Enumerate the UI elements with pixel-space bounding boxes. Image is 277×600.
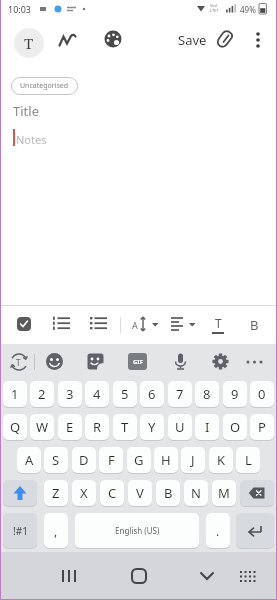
button[interactable]: Q	[3, 414, 27, 440]
button[interactable]: 6	[140, 381, 164, 407]
button[interactable]	[54, 562, 84, 590]
staticText: G	[134, 451, 144, 469]
button[interactable]: 2	[30, 381, 54, 407]
button[interactable]: X	[72, 480, 96, 506]
button[interactable]: V	[128, 480, 152, 506]
button[interactable]: 7	[168, 381, 192, 407]
button[interactable]	[236, 564, 260, 588]
button[interactable]: M	[212, 480, 236, 506]
button[interactable]: 5	[113, 381, 137, 407]
staticText: Uncategorised	[20, 81, 69, 91]
button[interactable]: O	[223, 414, 247, 440]
button[interactable]	[58, 33, 80, 51]
staticText: 6	[148, 385, 156, 403]
staticText: GIF	[133, 358, 143, 366]
staticText: ,	[54, 523, 58, 539]
button[interactable]	[210, 351, 231, 372]
button[interactable]	[240, 480, 274, 506]
button[interactable]	[44, 351, 65, 372]
button[interactable]: E	[58, 414, 82, 440]
button[interactable]: GIF	[128, 353, 147, 370]
button[interactable]: T	[206, 313, 230, 337]
button[interactable]: P	[250, 414, 274, 440]
button[interactable]: 0	[250, 381, 274, 407]
button[interactable]: F	[99, 447, 123, 473]
button[interactable]: C	[100, 480, 124, 506]
button[interactable]: ,	[44, 513, 68, 548]
staticText: T	[24, 33, 34, 53]
button[interactable]	[168, 313, 202, 337]
button[interactable]	[14, 313, 36, 335]
staticText: M	[218, 484, 230, 502]
button[interactable]: Uncategorised	[11, 77, 78, 95]
staticText: C	[108, 484, 117, 502]
button[interactable]: T	[14, 28, 44, 58]
button[interactable]: T	[113, 414, 137, 440]
staticText: D	[79, 451, 89, 469]
button[interactable]: U	[168, 414, 192, 440]
staticText: P	[258, 418, 266, 436]
button[interactable]: A	[130, 313, 164, 337]
staticText: Q	[10, 418, 21, 436]
button[interactable]: A	[17, 447, 41, 473]
button[interactable]: English (US)	[75, 513, 199, 548]
button[interactable]: 1	[3, 381, 27, 407]
button[interactable]: Y	[140, 414, 164, 440]
button[interactable]: D	[72, 447, 96, 473]
staticText: Save	[178, 31, 207, 49]
staticText: B	[250, 316, 259, 334]
staticText: T	[215, 315, 222, 331]
button[interactable]: 4	[85, 381, 109, 407]
button[interactable]: G	[127, 447, 151, 473]
staticText: S	[52, 451, 60, 469]
button[interactable]: .	[206, 513, 230, 548]
staticText: R	[93, 418, 102, 436]
button[interactable]: W	[30, 414, 54, 440]
button[interactable]: S	[44, 447, 68, 473]
staticText: K	[217, 451, 226, 469]
staticText: 3	[66, 385, 74, 403]
button[interactable]: B	[156, 480, 180, 506]
button[interactable]	[85, 351, 106, 372]
button[interactable]	[192, 562, 222, 590]
staticText: 1	[11, 385, 19, 403]
staticText: T	[121, 418, 129, 436]
button[interactable]: Z	[44, 480, 68, 506]
staticText: F	[108, 451, 115, 469]
staticText: A	[25, 451, 34, 469]
button[interactable]: 8	[195, 381, 219, 407]
button[interactable]: K	[209, 447, 233, 473]
button[interactable]: N	[184, 480, 208, 506]
button[interactable]: B	[242, 313, 266, 337]
button[interactable]	[51, 313, 73, 335]
button[interactable]: R	[85, 414, 109, 440]
button[interactable]	[236, 513, 274, 548]
button[interactable]	[216, 29, 237, 50]
button[interactable]: I	[195, 414, 219, 440]
button[interactable]	[88, 313, 110, 335]
button[interactable]: L	[236, 447, 260, 473]
button[interactable]: Save	[170, 23, 215, 57]
staticText: O	[230, 418, 241, 436]
staticText: A	[132, 319, 138, 331]
staticText: !#1	[13, 524, 28, 538]
button[interactable]	[170, 351, 191, 372]
button[interactable]	[3, 480, 37, 506]
staticText: 7	[176, 385, 184, 403]
button[interactable]	[103, 30, 125, 52]
button[interactable]: 3	[58, 381, 82, 407]
button[interactable]: J	[181, 447, 205, 473]
button[interactable]: !#1	[3, 513, 37, 548]
staticText: I	[205, 418, 210, 436]
staticText: 9	[231, 385, 239, 403]
button[interactable]	[248, 25, 268, 55]
staticText: 5	[121, 385, 129, 403]
button[interactable]	[244, 351, 265, 372]
staticText: J	[191, 451, 195, 469]
button[interactable]	[124, 562, 154, 590]
button[interactable]: T	[8, 351, 30, 373]
staticText: 4	[93, 385, 101, 403]
button[interactable]: H	[154, 447, 178, 473]
staticText: V	[136, 484, 144, 502]
button[interactable]: 9	[223, 381, 247, 407]
